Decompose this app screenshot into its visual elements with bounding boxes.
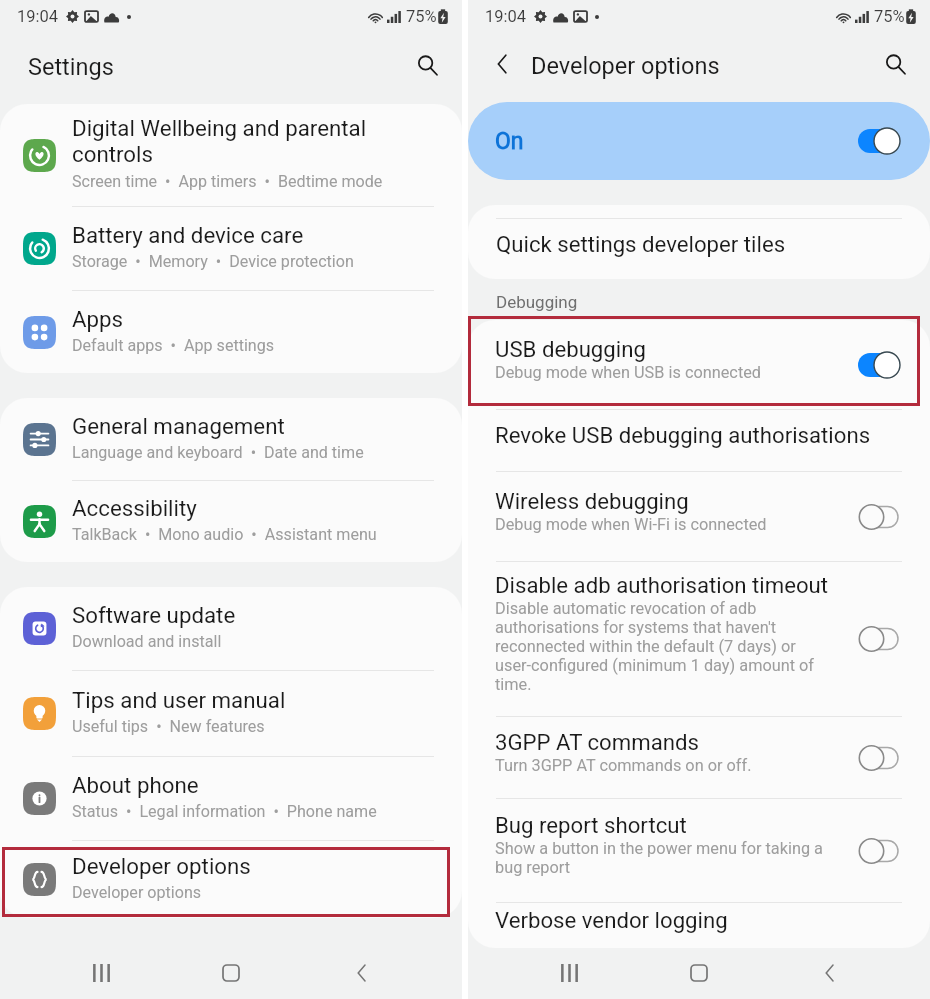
staticText: Revoke USB debugging authorisations <box>495 422 871 448</box>
button[interactable]: Disable adb authorisation timeout <box>468 562 930 716</box>
button[interactable]: Turn on <box>858 626 900 652</box>
staticText: Wireless debugging <box>495 488 689 514</box>
button[interactable]: On <box>468 102 930 180</box>
staticText: Digital Wellbeing and parental controls <box>72 115 448 168</box>
staticText: General management <box>72 413 285 439</box>
staticText: Tips and user manual <box>72 687 286 713</box>
staticText: 3GPP AT commands <box>495 729 699 755</box>
button[interactable]: Digital Wellbeing and parental controls <box>0 104 462 206</box>
staticText: Developer options <box>72 853 251 879</box>
staticText: 19:04 <box>17 7 59 26</box>
button[interactable]: Developer options <box>0 841 462 918</box>
button[interactable]: Recents <box>543 947 595 999</box>
button[interactable]: Wireless debugging <box>468 472 930 561</box>
button[interactable]: 3GPP AT commands <box>468 717 930 798</box>
button[interactable]: About phone <box>0 757 462 840</box>
staticText: Battery and device care <box>72 222 304 248</box>
button[interactable]: Turn off <box>858 352 900 378</box>
staticText: Debugging <box>496 292 930 312</box>
staticText: 19:04 <box>485 7 527 26</box>
button[interactable]: Back <box>480 42 524 86</box>
button[interactable]: USB debugging <box>468 320 930 409</box>
staticText: Turn 3GPP AT commands on or off. <box>495 756 752 775</box>
staticText: Download and install <box>72 632 222 651</box>
button[interactable]: Bug report shortcut <box>468 799 930 902</box>
staticText: Verbose vendor logging <box>495 907 728 933</box>
staticText: Disable automatic revocation of adb auth… <box>495 599 833 694</box>
button[interactable]: Quick settings developer tiles <box>468 219 930 279</box>
button[interactable]: Verbose vendor logging <box>468 903 930 948</box>
button[interactable]: Search <box>873 42 917 86</box>
staticText: On <box>495 128 524 155</box>
staticText: Developer options <box>72 883 202 902</box>
staticText: Apps <box>72 306 124 332</box>
button[interactable]: Home <box>205 947 257 999</box>
button[interactable]: Turn off <box>858 128 900 154</box>
button[interactable]: General management <box>0 398 462 480</box>
staticText: Show a button in the power menu for taki… <box>495 839 833 877</box>
staticText: Developer options <box>531 52 720 80</box>
button[interactable]: Back <box>803 947 855 999</box>
staticText: Debug mode when Wi-Fi is connected <box>495 515 767 534</box>
staticText: Bug report shortcut <box>495 812 687 838</box>
button[interactable]: Revoke USB debugging authorisations <box>468 410 930 471</box>
staticText: Accessibility <box>72 495 197 521</box>
button[interactable]: Search <box>405 43 449 87</box>
button[interactable]: Recents <box>75 947 127 999</box>
staticText: Status • Legal information • Phone name <box>72 802 377 821</box>
button[interactable]: Turn on <box>858 838 900 864</box>
staticText: Useful tips • New features <box>72 717 265 736</box>
staticText: Software update <box>72 602 236 628</box>
staticText: TalkBack • Mono audio • Assistant menu <box>72 525 377 544</box>
button[interactable]: Apps <box>0 291 462 373</box>
button[interactable]: Battery and device care <box>0 207 462 290</box>
staticText: About phone <box>72 772 199 798</box>
button[interactable]: Software update <box>0 587 462 670</box>
button[interactable]: Turn on <box>858 745 900 771</box>
staticText: USB debugging <box>495 336 646 362</box>
staticText: Disable adb authorisation timeout <box>495 572 829 598</box>
staticText: 75% <box>874 7 905 26</box>
button[interactable]: Turn on <box>858 504 900 530</box>
button[interactable]: Home <box>673 947 725 999</box>
staticText: Language and keyboard • Date and time <box>72 443 364 462</box>
button[interactable]: Back <box>335 947 387 999</box>
staticText: Storage • Memory • Device protection <box>72 252 354 271</box>
button[interactable]: Tips and user manual <box>0 671 462 756</box>
staticText: Default apps • App settings <box>72 336 275 355</box>
staticText: Quick settings developer tiles <box>496 231 786 257</box>
staticText: Screen time • App timers • Bedtime mode <box>72 172 383 191</box>
staticText: 75% <box>406 7 437 26</box>
button[interactable]: Accessibility <box>0 481 462 562</box>
staticText: Settings <box>28 53 114 81</box>
staticText: Debug mode when USB is connected <box>495 363 762 382</box>
